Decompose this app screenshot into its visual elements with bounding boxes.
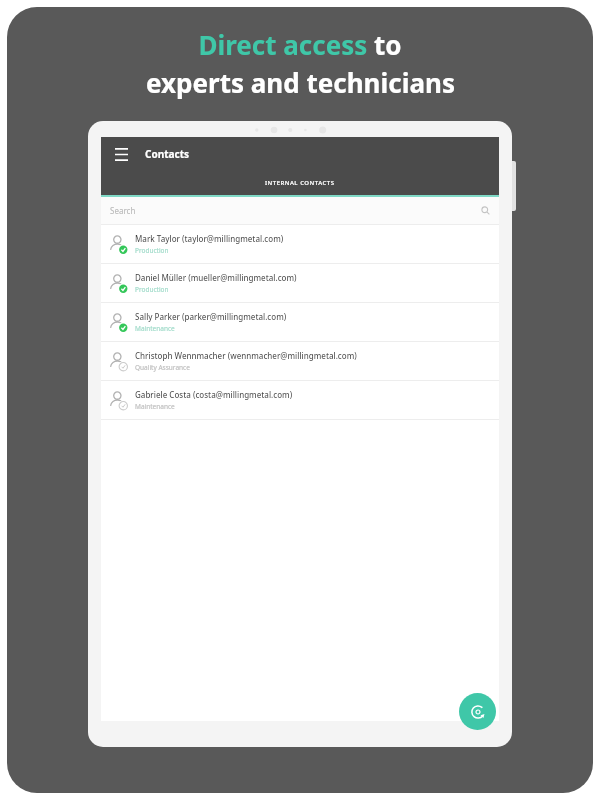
button[interactable]: INTERNAL CONTACTS: [101, 171, 499, 197]
staticText: INTERNAL CONTACTS: [265, 179, 335, 187]
staticText: Daniel Müller (mueller@millingmetal.com): [135, 272, 297, 283]
button[interactable]: Daniel Müller (mueller@millingmetal.com): [101, 264, 499, 303]
staticText: Mark Taylor (taylor@millingmetal.com): [135, 233, 284, 244]
button[interactable]: Mark Taylor (taylor@millingmetal.com): [101, 225, 499, 264]
button[interactable]: Sally Parker (parker@millingmetal.com): [101, 303, 499, 342]
button[interactable]: Search: [101, 197, 499, 224]
staticText: Contacts: [145, 147, 190, 161]
staticText: Direct access to: [198, 27, 402, 62]
button[interactable]: Sync contacts: [459, 693, 496, 730]
staticText: Christoph Wennmacher (wennmacher@milling…: [135, 350, 357, 361]
staticText: Sally Parker (parker@millingmetal.com): [135, 311, 287, 322]
button[interactable]: Open navigation menu: [108, 141, 134, 167]
staticText: Maintenance: [135, 402, 175, 411]
staticText: Production: [135, 246, 169, 255]
staticText: Quality Assurance: [135, 363, 190, 372]
button[interactable]: Gabriele Costa (costa@millingmetal.com): [101, 381, 499, 420]
staticText: Maintenance: [135, 324, 175, 333]
staticText: Production: [135, 285, 169, 294]
staticText: Gabriele Costa (costa@millingmetal.com): [135, 389, 293, 400]
button[interactable]: Christoph Wennmacher (wennmacher@milling…: [101, 342, 499, 381]
staticText: experts and technicians: [146, 65, 455, 100]
staticText: Search: [110, 205, 136, 216]
